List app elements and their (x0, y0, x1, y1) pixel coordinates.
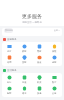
button[interactable]: 还款 (47, 54, 62, 65)
button[interactable]: 医疗 (47, 74, 62, 85)
staticText: 理财 (37, 50, 42, 53)
button[interactable]: 理财 (32, 43, 47, 54)
staticText: 搜索服务 (5, 29, 13, 32)
staticText: 信用 (7, 61, 12, 64)
button[interactable]: 信用 (2, 54, 17, 65)
button[interactable]: 充值 (17, 74, 32, 85)
staticText: 快递 (37, 92, 42, 95)
button[interactable]: 电影 (2, 85, 17, 96)
button[interactable]: 公益 (47, 85, 62, 96)
staticText: 还款 (52, 61, 57, 64)
staticText: 金融服务 (7, 38, 17, 41)
button[interactable]: 酒店 (17, 85, 32, 96)
staticText: 酒店 (22, 92, 27, 95)
staticText: 医疗 (52, 81, 57, 84)
staticText: 全部 > (54, 29, 60, 32)
staticText: 更多服务 (22, 13, 42, 19)
button[interactable]: 收款 (17, 43, 32, 54)
staticText: 生活服务 (7, 69, 17, 72)
button[interactable]: 支付 (2, 43, 17, 54)
staticText: 公益 (52, 92, 57, 95)
button[interactable]: 外卖 (32, 74, 47, 85)
button[interactable]: 贷款 (17, 54, 32, 65)
staticText: 外卖 (37, 81, 42, 84)
staticText: 保险 (52, 50, 57, 53)
button[interactable]: 保险 (47, 43, 62, 54)
button[interactable]: 出行 (2, 74, 17, 85)
staticText: 充值 (22, 81, 27, 84)
staticText: 电影 (7, 92, 12, 95)
button[interactable]: 搜索服务 (2, 28, 62, 36)
button[interactable]: 基金 (32, 54, 47, 65)
button[interactable]: 快递 (32, 85, 47, 96)
staticText: 支付 (7, 50, 12, 53)
staticText: 贷款 (22, 61, 27, 64)
staticText: 出行 (7, 81, 12, 84)
staticText: 收款 (22, 50, 27, 53)
staticText: 基金 (37, 61, 42, 64)
staticText: 便捷生活 一触即达 (22, 20, 42, 23)
